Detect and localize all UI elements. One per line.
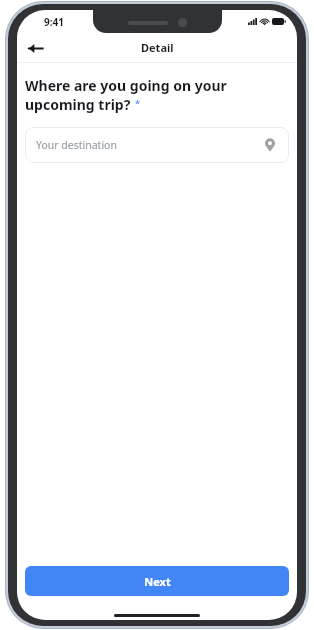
button[interactable]: Next [25, 566, 289, 596]
staticText: 9:41 [44, 15, 64, 29]
other: Choose location [262, 137, 278, 153]
staticText: Detail [141, 40, 174, 55]
button[interactable]: Your destination [25, 127, 289, 163]
staticText: Your destination [36, 138, 117, 152]
staticText: * [135, 97, 140, 109]
staticText: upcoming trip? [25, 95, 131, 114]
staticText: Next [144, 574, 171, 589]
staticText: Where are you going on your [25, 76, 227, 95]
button[interactable]: Back [21, 34, 49, 62]
